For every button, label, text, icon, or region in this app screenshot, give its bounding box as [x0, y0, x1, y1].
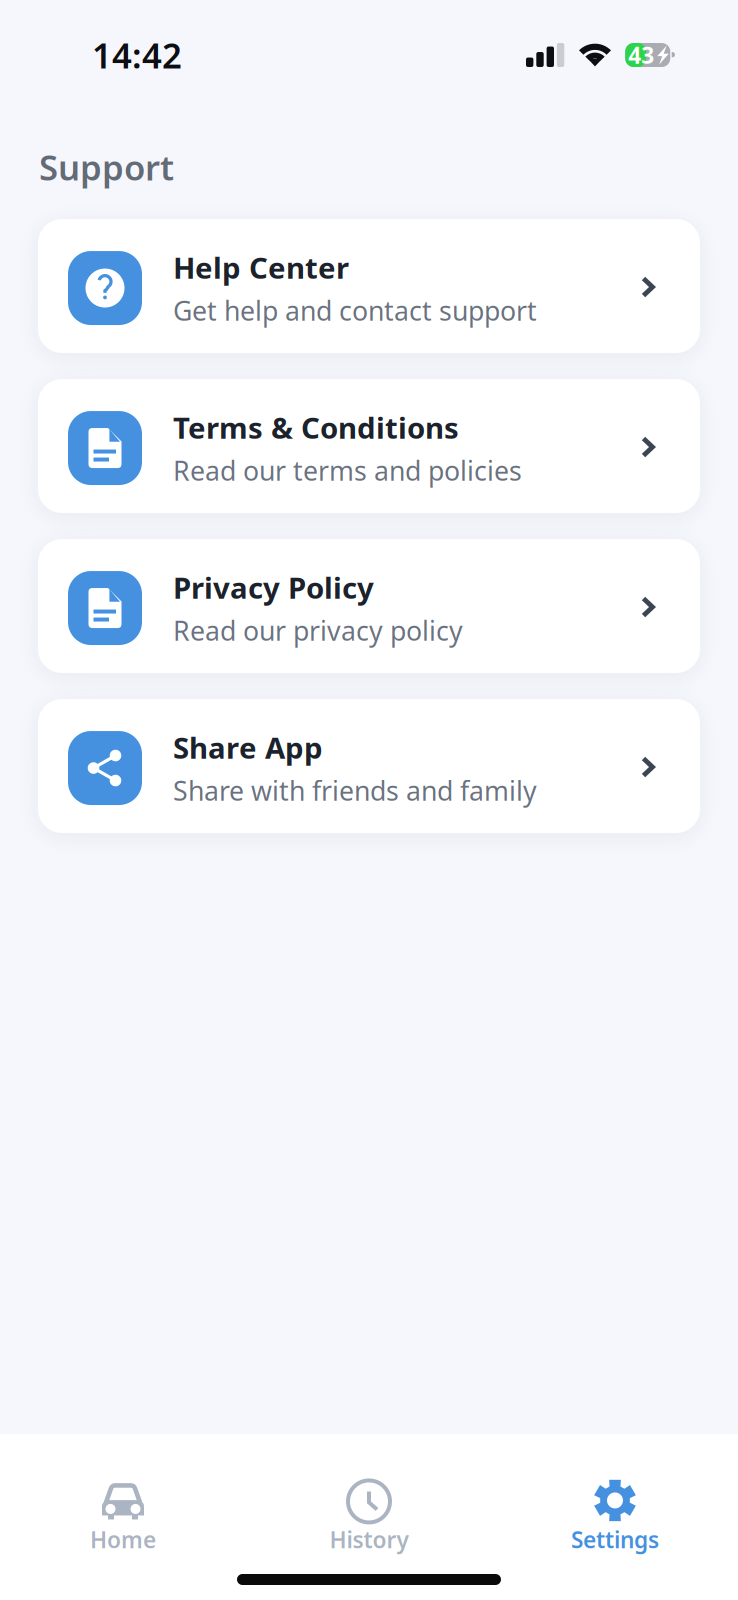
staticText: Share with friends and family	[173, 773, 537, 808]
staticText: Privacy Policy	[173, 568, 374, 607]
staticText: Help Center	[173, 248, 349, 287]
button[interactable]: Home	[0, 1482, 246, 1552]
staticText: Home	[90, 1524, 156, 1554]
staticText: 14:42	[92, 32, 182, 78]
button[interactable]: History	[246, 1482, 492, 1552]
button[interactable]: Share App	[38, 699, 700, 833]
staticText: Terms & Conditions	[173, 408, 459, 447]
staticText: Read our terms and policies	[173, 453, 522, 488]
staticText: Read our privacy policy	[173, 613, 463, 648]
button[interactable]: Privacy Policy	[38, 539, 700, 673]
staticText: Get help and contact support	[173, 293, 537, 328]
staticText: Share App	[173, 728, 323, 767]
button[interactable]: Help Center	[38, 219, 700, 353]
button[interactable]: Settings	[492, 1482, 738, 1552]
staticText: History	[329, 1524, 408, 1554]
staticText: Support	[39, 144, 174, 190]
button[interactable]: Terms & Conditions	[38, 379, 700, 513]
staticText: 43	[628, 40, 654, 70]
staticText: Settings	[571, 1524, 659, 1554]
